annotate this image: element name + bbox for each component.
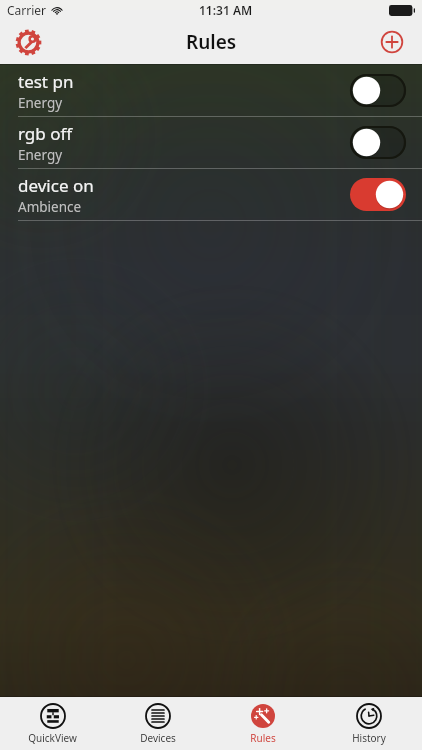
staticText: Devices [140,731,176,745]
button[interactable]: QuickView [0,697,105,750]
staticText: Energy [18,146,63,164]
staticText: rgb off [18,122,73,145]
staticText: History [352,731,386,745]
button[interactable]: device on [0,169,422,220]
button[interactable]: Add rule [370,20,414,64]
button[interactable]: History [316,697,422,750]
button[interactable]: Rule enabled [350,178,406,211]
staticText: Carrier [7,2,47,18]
staticText: test pn [18,70,74,93]
staticText: 11:31 AM [199,2,253,18]
staticText: device on [18,174,94,197]
staticText: Rules [186,29,237,55]
button[interactable]: test pn [0,65,422,116]
staticText: QuickView [28,731,77,745]
button[interactable]: Devices [105,697,210,750]
button[interactable]: Settings [6,20,50,64]
button[interactable]: rgb off [0,117,422,168]
staticText: Rules [250,731,276,745]
button[interactable]: Rules [210,697,316,750]
button[interactable]: Rule disabled [350,126,406,159]
staticText: Energy [18,94,63,112]
button[interactable]: Rule disabled [350,74,406,107]
staticText: Ambience [18,198,82,216]
